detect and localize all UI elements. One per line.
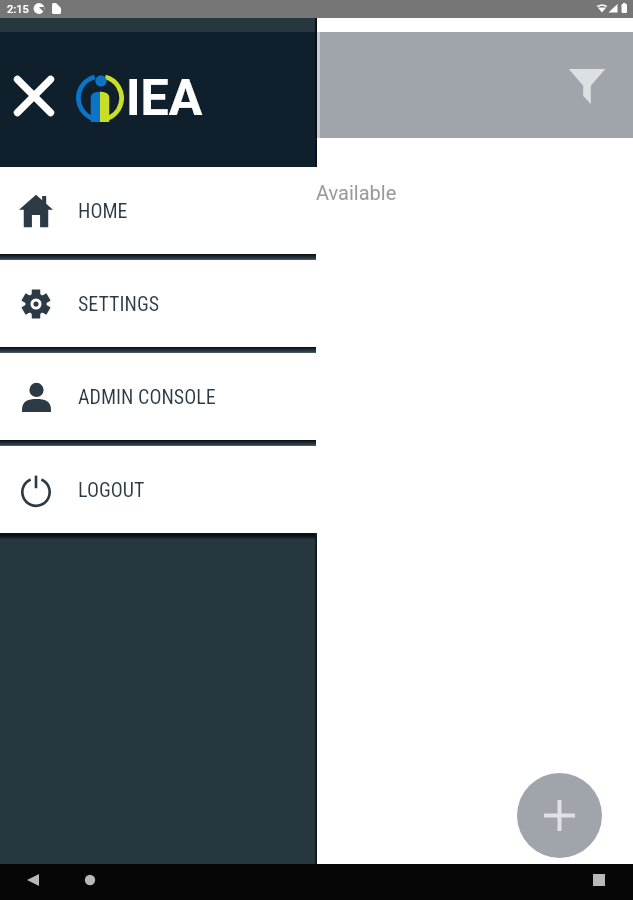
button[interactable]: Close menu [8,70,60,122]
button[interactable]: LOGOUT [0,446,316,533]
button[interactable]: Filter [559,57,615,113]
staticText: 2:15 [7,3,29,16]
staticText: IEA [126,69,203,128]
button[interactable]: SETTINGS [0,260,316,347]
button[interactable]: ADMIN CONSOLE [0,353,316,440]
staticText: LOGOUT [78,478,145,501]
staticText: ADMIN CONSOLE [78,385,216,408]
staticText: HOME [78,199,128,222]
button[interactable]: Add [517,773,602,858]
staticText: Available [316,181,397,204]
staticText: SETTINGS [78,292,160,315]
button[interactable]: HOME [0,167,316,254]
